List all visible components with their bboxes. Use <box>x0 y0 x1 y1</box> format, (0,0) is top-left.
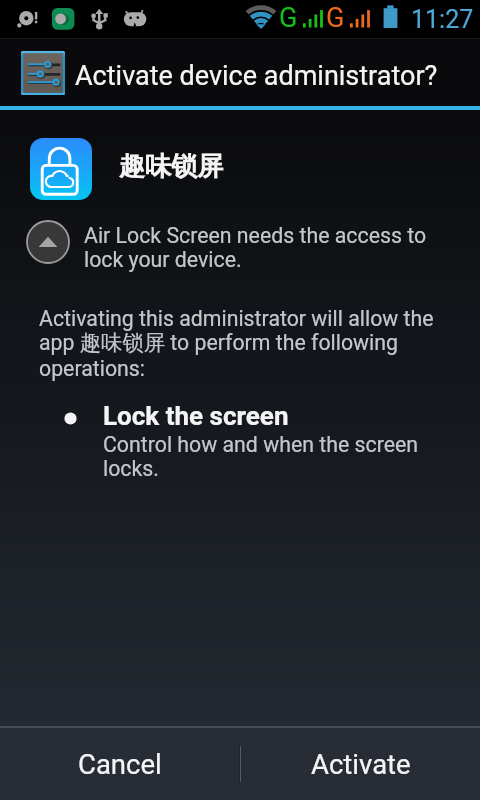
staticText: Activate <box>311 748 411 780</box>
staticText: Activating this administrator will allow… <box>39 306 445 382</box>
staticText: Activate device administrator? <box>75 60 438 92</box>
button[interactable]: Activate <box>241 728 480 800</box>
staticText: Control how and when the screen locks. <box>103 432 448 482</box>
staticText: G <box>326 2 345 34</box>
button[interactable]: Cancel <box>0 728 239 800</box>
staticText: 趣味锁屏 <box>119 150 223 183</box>
staticText: 11:27 <box>411 5 474 34</box>
staticText: Lock the screen <box>103 401 289 431</box>
staticText: Cancel <box>78 748 162 780</box>
staticText: G <box>279 2 298 34</box>
staticText: Air Lock Screen needs the access to lock… <box>84 223 427 273</box>
button[interactable]: Collapse description <box>25 219 71 265</box>
